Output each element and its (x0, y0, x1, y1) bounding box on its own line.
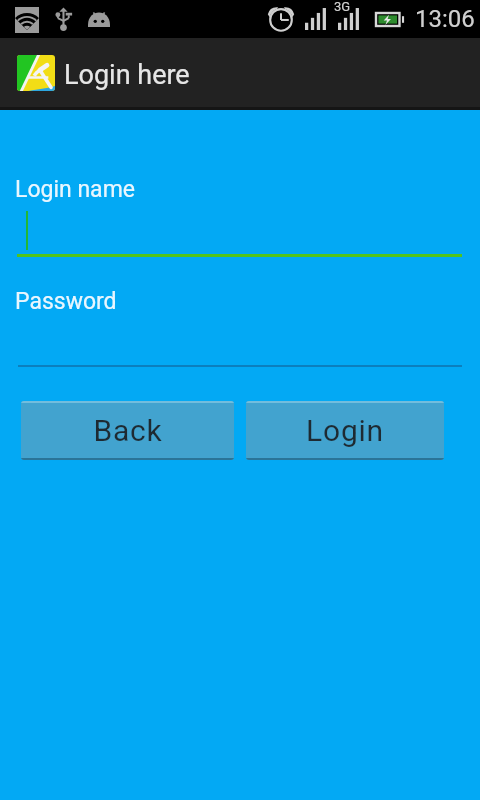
button[interactable]: Login here, navigate up (0, 38, 200, 110)
button[interactable]: Login name (15, 172, 462, 257)
staticText: Login name (15, 176, 135, 203)
staticText: Back (93, 413, 163, 448)
button[interactable]: Login (246, 401, 444, 460)
staticText: Login here (64, 59, 190, 91)
staticText: 3G (334, 0, 351, 14)
staticText: 13:06 (415, 5, 475, 33)
button[interactable]: Password (15, 284, 462, 367)
staticText: Login (306, 413, 384, 448)
button[interactable]: Back (21, 401, 234, 460)
staticText: Password (15, 288, 117, 315)
